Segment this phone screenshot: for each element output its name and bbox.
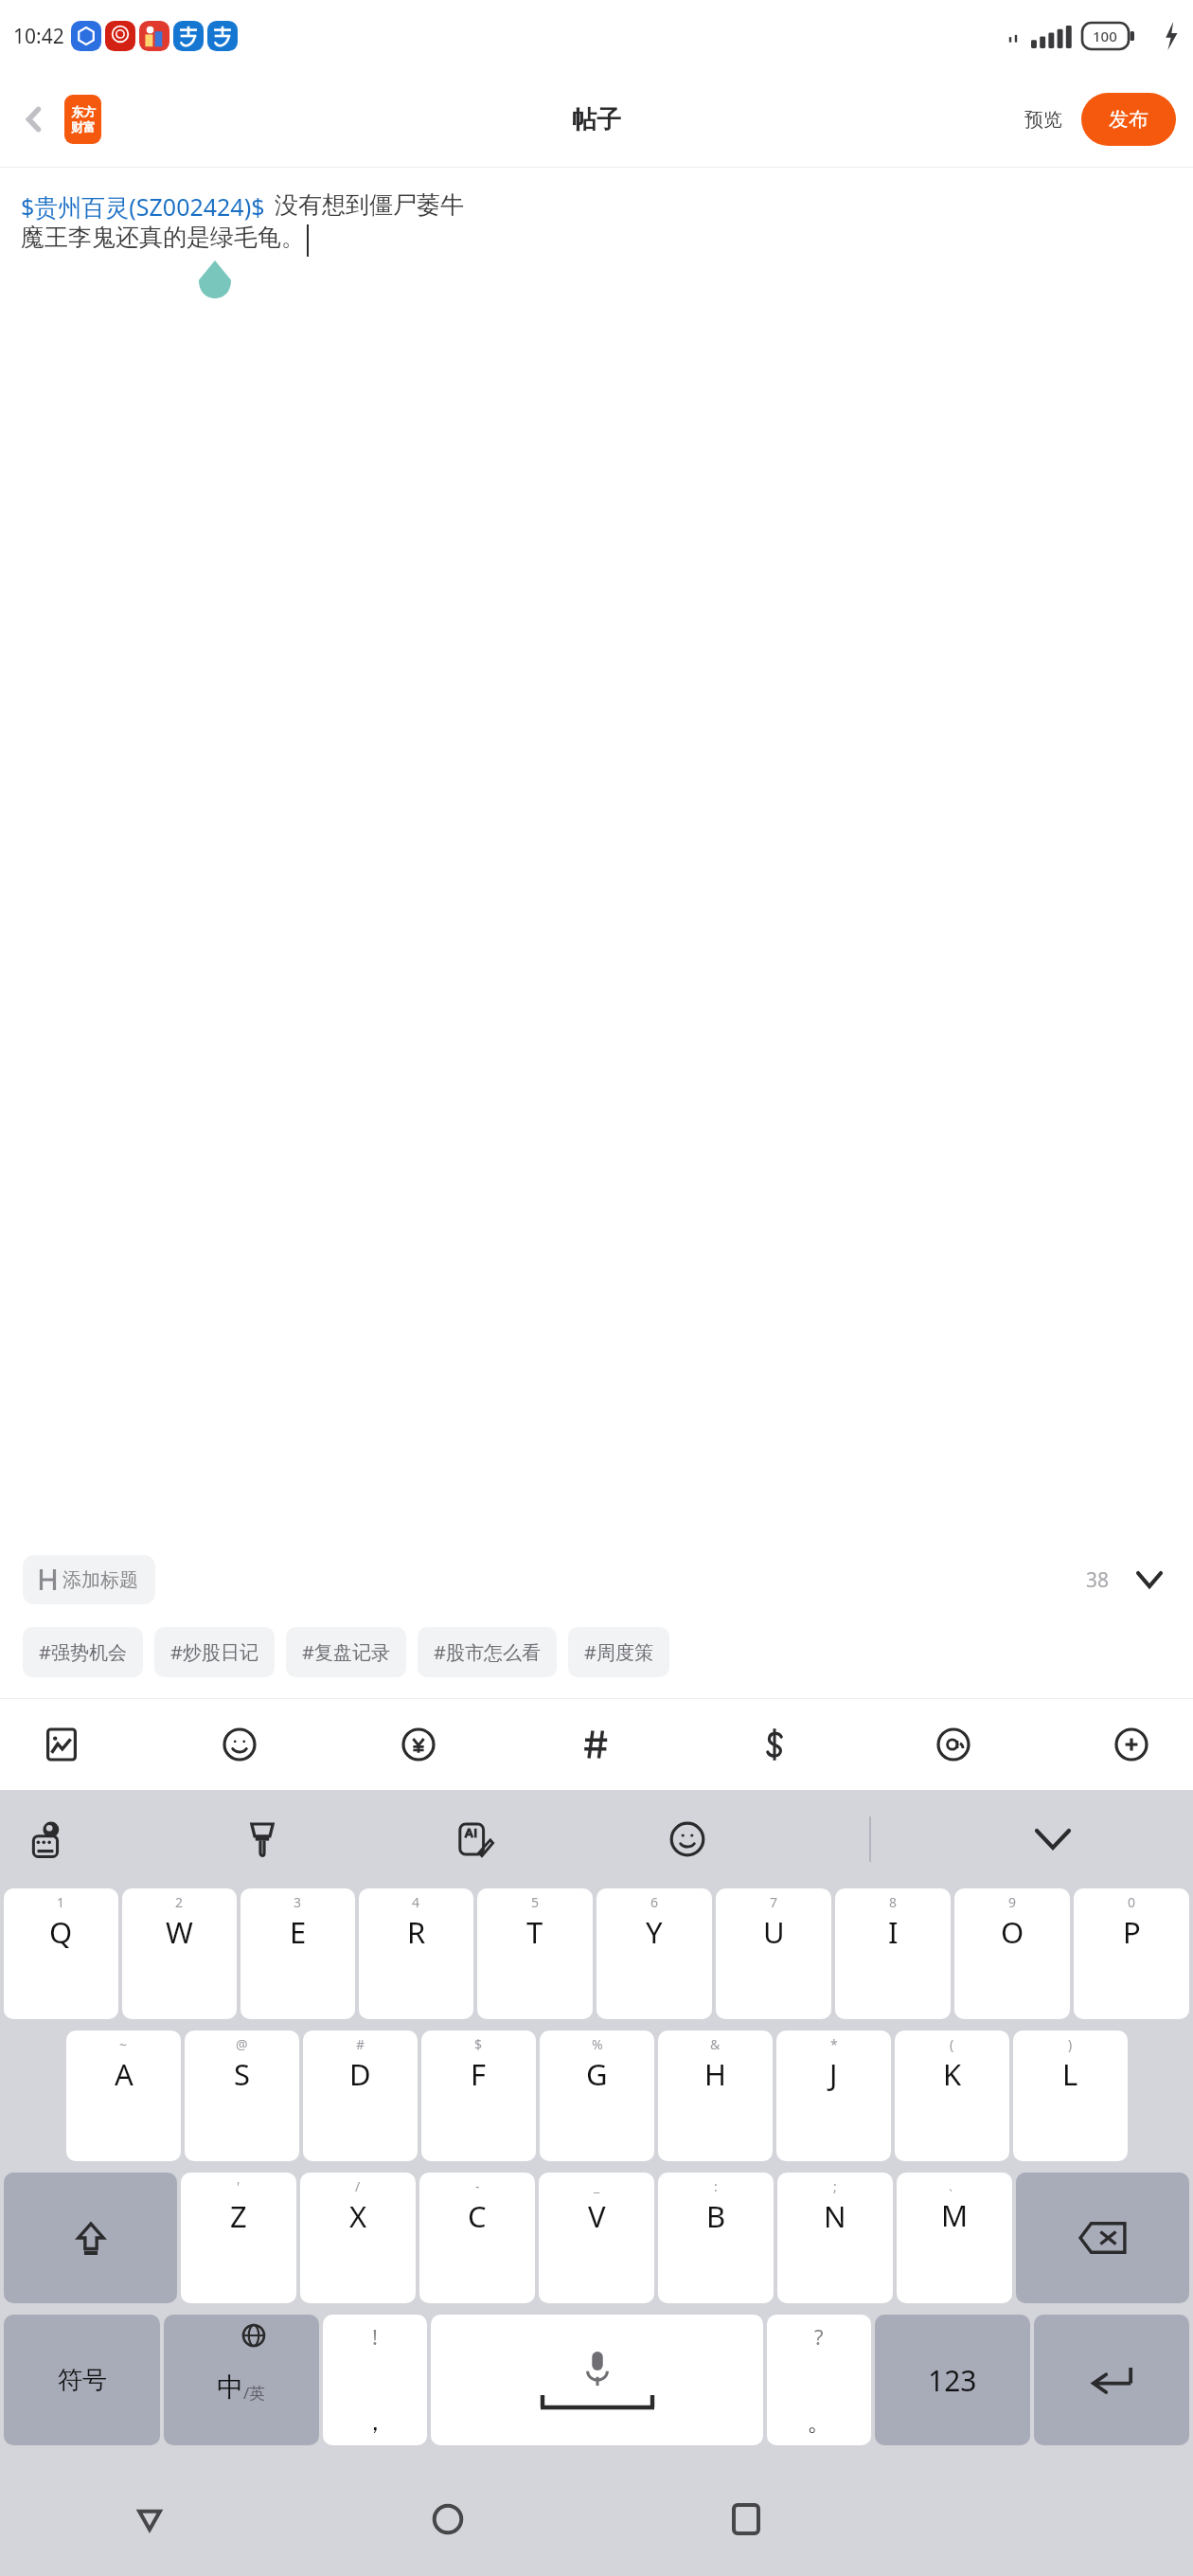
button[interactable]: Language [19, 1808, 81, 1870]
button[interactable]: Insert image [32, 1715, 91, 1774]
button[interactable]: Emoji [656, 1808, 719, 1870]
staticText: K [943, 2054, 962, 2094]
button[interactable]: $ [421, 2030, 536, 2161]
button[interactable]: Currency [389, 1715, 448, 1774]
button[interactable]: 6 [596, 1888, 712, 2019]
button[interactable]: # [303, 2030, 418, 2161]
staticText: V [588, 2196, 606, 2236]
button[interactable]: _ [539, 2173, 654, 2303]
button[interactable]: Back [0, 2462, 298, 2576]
button[interactable]: / [300, 2173, 416, 2303]
button[interactable]: 2 [122, 1888, 237, 2019]
button[interactable]: 0 [1074, 1888, 1189, 2019]
button[interactable]: 3 [240, 1888, 355, 2019]
staticText: ) [1068, 2035, 1073, 2053]
staticText: ( [950, 2035, 954, 2053]
staticText: T [526, 1912, 543, 1952]
staticText: U [763, 1912, 785, 1952]
staticText: : [714, 2177, 718, 2195]
button[interactable]: Home [298, 2462, 596, 2576]
button[interactable]: Hide keyboard [1022, 1808, 1084, 1870]
button[interactable]: Backspace [1016, 2173, 1189, 2303]
staticText: Z [230, 2196, 247, 2236]
staticText: X [349, 2196, 367, 2236]
staticText: I [888, 1912, 899, 1952]
button[interactable]: 123 [875, 2315, 1030, 2445]
staticText: 6 [650, 1893, 659, 1911]
button[interactable]: - [419, 2173, 535, 2303]
staticText: 财富 [71, 119, 96, 134]
button[interactable]: ! [323, 2315, 427, 2445]
staticText: _ [594, 2177, 600, 2195]
staticText: 中 [217, 2370, 243, 2404]
button[interactable]: Hashtag [567, 1715, 626, 1774]
button[interactable]: 5 [477, 1888, 593, 2019]
button[interactable]: Shift [4, 2173, 177, 2303]
staticText: 8 [889, 1893, 898, 1911]
staticText: 2 [175, 1893, 184, 1911]
button[interactable]: % [540, 2030, 654, 2161]
button[interactable]: Collapse [1129, 1559, 1170, 1601]
staticText: 、 [948, 2177, 961, 2194]
button[interactable]: 东方财富 [64, 95, 101, 144]
button[interactable]: 7 [716, 1888, 831, 2019]
staticText: 38 [1086, 1566, 1110, 1594]
button[interactable]: Theme [231, 1808, 294, 1870]
button[interactable]: @ [185, 2030, 299, 2161]
button[interactable]: 4 [359, 1888, 473, 2019]
staticText: ? [814, 2322, 824, 2351]
button[interactable]: & [658, 2030, 773, 2161]
button[interactable]: 符号 [4, 2315, 160, 2445]
staticText: O [1001, 1912, 1024, 1952]
staticText: ! [372, 2322, 378, 2351]
button[interactable]: ~ [66, 2030, 181, 2161]
staticText: 3 [294, 1893, 302, 1911]
staticText: 7 [770, 1893, 778, 1911]
button[interactable]: ( [895, 2030, 1009, 2161]
button[interactable]: AI writing [443, 1808, 506, 1870]
button[interactable]: ' [181, 2173, 296, 2303]
button[interactable]: Emoji [210, 1715, 269, 1774]
button[interactable]: Back [8, 93, 61, 146]
button[interactable]: #周度策 [568, 1627, 669, 1677]
staticText: F [471, 2054, 487, 2094]
staticText: #复盘记录 [302, 1639, 390, 1665]
staticText: L [1062, 2054, 1078, 2094]
staticText: / [355, 2177, 361, 2195]
button[interactable]: Chinese English toggle [164, 2315, 319, 2445]
button[interactable]: #复盘记录 [286, 1627, 406, 1677]
staticText: $贵州百灵(SZ002424)$ [21, 190, 265, 223]
button[interactable]: Enter [1034, 2315, 1189, 2445]
button[interactable]: 添加标题 [23, 1555, 155, 1604]
staticText: P [1123, 1912, 1141, 1952]
button[interactable]: 预览 [1017, 100, 1070, 139]
staticText: R [407, 1912, 426, 1952]
staticText: 123 [928, 2361, 977, 2400]
staticText: Y [646, 1912, 663, 1952]
button[interactable]: Recents [596, 2462, 895, 2576]
button[interactable]: #强势机会 [23, 1627, 143, 1677]
button[interactable]: #股市怎么看 [418, 1627, 557, 1677]
button[interactable]: 、 [897, 2173, 1012, 2303]
button[interactable]: More [1102, 1715, 1161, 1774]
button[interactable]: * [776, 2030, 891, 2161]
button[interactable]: : [658, 2173, 774, 2303]
staticText: 9 [1008, 1893, 1017, 1911]
staticText: E [290, 1912, 307, 1952]
button[interactable]: ) [1013, 2030, 1128, 2161]
button[interactable]: ; [777, 2173, 893, 2303]
button[interactable]: 8 [835, 1888, 951, 2019]
staticText: 发布 [1109, 107, 1148, 132]
button[interactable]: ? [767, 2315, 871, 2445]
staticText: D [349, 2054, 371, 2094]
staticText: #炒股日记 [170, 1639, 258, 1665]
button[interactable]: 9 [954, 1888, 1070, 2019]
button[interactable]: Stock [745, 1715, 804, 1774]
staticText: % [592, 2035, 603, 2053]
button[interactable]: Mention [924, 1715, 983, 1774]
button[interactable]: #炒股日记 [154, 1627, 275, 1677]
button[interactable]: Space [431, 2315, 763, 2445]
staticText: Q [49, 1912, 73, 1952]
button[interactable]: 1 [4, 1888, 118, 2019]
button[interactable]: 发布 [1081, 93, 1176, 146]
